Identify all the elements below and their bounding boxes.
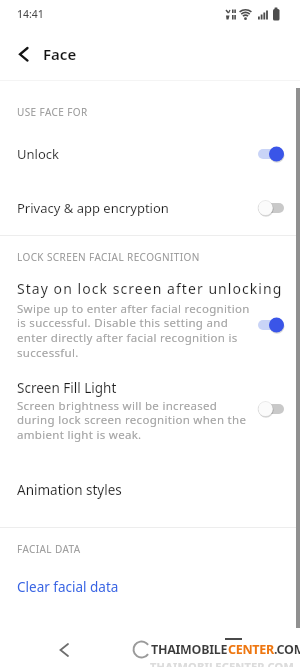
staticText: Screen brightness will be increased duri… — [17, 398, 247, 443]
staticText: Swipe up to enter after facial recogniti… — [17, 301, 250, 361]
staticText: .COM — [274, 641, 300, 658]
button[interactable]: Unlock — [0, 132, 300, 176]
staticText: THAIMOBILECENTER.COM — [150, 659, 294, 667]
button[interactable]: Animation styles — [0, 468, 300, 512]
button[interactable] — [50, 636, 78, 664]
staticText: Stay on lock screen after unlocking — [17, 279, 283, 298]
staticText: LOCK SCREEN FACIAL RECOGNITION — [17, 250, 200, 264]
button[interactable]: Privacy & app encryption — [0, 186, 300, 230]
staticText: 14:41 — [17, 7, 44, 21]
staticText: Screen Fill Light — [17, 379, 117, 397]
staticText: USE FACE FOR — [17, 105, 88, 119]
button[interactable]: Clear facial data — [17, 578, 119, 596]
staticText: CENTER — [228, 641, 274, 658]
staticText: Privacy & app encryption — [17, 199, 169, 217]
staticText: Animation styles — [17, 481, 122, 499]
staticText: Unlock — [17, 145, 59, 163]
button[interactable]: Stay on lock screen after unlocking — [0, 279, 300, 361]
staticText: Face — [43, 44, 77, 64]
staticText: FACIAL DATA — [17, 542, 81, 556]
button[interactable]: Screen Fill Light — [0, 379, 300, 443]
staticText: THAIMOBILE — [151, 641, 228, 658]
button[interactable] — [17, 47, 30, 62]
